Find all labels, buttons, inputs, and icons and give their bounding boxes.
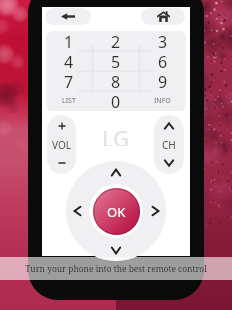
button[interactable]: 5 bbox=[92, 51, 139, 71]
staticText: 1 bbox=[64, 31, 74, 51]
staticText: LG bbox=[102, 123, 130, 146]
staticText: 9 bbox=[158, 71, 168, 91]
staticText: Turn your phone into the best remote con… bbox=[25, 263, 207, 274]
staticText: VOL bbox=[52, 138, 71, 152]
staticText: 8 bbox=[111, 71, 121, 91]
staticText: LIST bbox=[62, 96, 76, 106]
button[interactable]: 8 bbox=[92, 71, 139, 91]
button[interactable]: 4 bbox=[46, 51, 92, 71]
button[interactable]: Back bbox=[45, 8, 91, 25]
button[interactable]: Channel down bbox=[154, 152, 184, 174]
button[interactable]: Down bbox=[107, 241, 125, 259]
button[interactable]: OK bbox=[93, 188, 140, 235]
button[interactable]: INFO bbox=[139, 91, 186, 111]
button[interactable]: 9 bbox=[139, 71, 186, 91]
button[interactable]: 2 bbox=[92, 31, 139, 51]
staticText: OK bbox=[107, 203, 126, 221]
staticText: 4 bbox=[64, 51, 74, 71]
button[interactable]: Channel up bbox=[154, 115, 184, 137]
staticText: INFO bbox=[154, 96, 171, 106]
button[interactable]: Volume down bbox=[47, 152, 76, 174]
button[interactable]: 1 bbox=[46, 31, 92, 51]
button[interactable]: Right bbox=[146, 202, 164, 220]
button[interactable]: 3 bbox=[139, 31, 186, 51]
staticText: CH bbox=[162, 138, 176, 152]
staticText: 0 bbox=[111, 91, 121, 111]
button[interactable]: 7 bbox=[46, 71, 92, 91]
staticText: 3 bbox=[158, 31, 168, 51]
button[interactable]: Up bbox=[107, 163, 125, 181]
button[interactable]: Left bbox=[68, 202, 86, 220]
button[interactable]: 6 bbox=[139, 51, 186, 71]
button[interactable]: Volume up bbox=[47, 115, 76, 137]
button[interactable]: 0 bbox=[92, 91, 139, 111]
staticText: 2 bbox=[111, 31, 121, 51]
button[interactable]: Home bbox=[141, 8, 185, 25]
staticText: 7 bbox=[64, 71, 74, 91]
staticText: 5 bbox=[111, 51, 121, 71]
button[interactable]: LIST bbox=[46, 91, 92, 111]
staticText: 6 bbox=[158, 51, 168, 71]
